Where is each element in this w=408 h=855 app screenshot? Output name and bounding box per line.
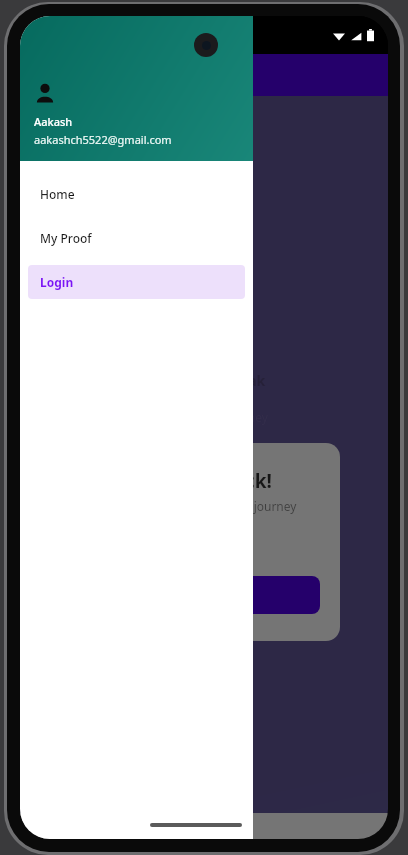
staticText: journey <box>225 409 268 425</box>
staticText: Home <box>40 186 75 202</box>
staticText: aakashch5522@gmail.com <box>34 132 172 147</box>
button[interactable]: My Proof <box>28 221 245 255</box>
staticText: Aakash <box>34 114 73 129</box>
button[interactable]: Home <box>28 177 245 211</box>
staticText: Login <box>40 274 74 290</box>
staticText: Continue your fitness journey <box>130 498 297 514</box>
button[interactable]: Login <box>28 265 245 299</box>
staticText: My Proof <box>40 230 92 246</box>
staticText: Welcome back! <box>130 468 272 494</box>
staticText: Streak <box>220 371 266 390</box>
button[interactable] <box>130 576 320 614</box>
